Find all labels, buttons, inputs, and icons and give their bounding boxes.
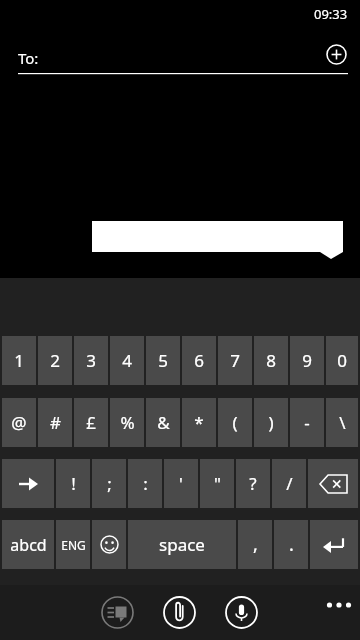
button[interactable]: \ [326,398,358,447]
staticText: - [304,411,310,434]
button[interactable]: Messages [101,596,134,629]
staticText: To: [18,48,39,68]
button[interactable] [2,459,54,508]
staticText: 6 [194,349,204,372]
button[interactable]: 2 [38,336,72,385]
button[interactable]: 1 [2,336,36,385]
staticText: # [50,411,61,434]
button[interactable]: . [274,520,308,569]
staticText: & [157,411,170,434]
staticText: ? [249,472,257,495]
staticText: ( [232,411,238,434]
button[interactable]: Add contact [324,42,348,66]
button[interactable]: @ [2,398,36,447]
staticText: 09:33 [314,5,348,23]
staticText: £ [86,411,96,434]
staticText: ' [179,472,183,495]
staticText: 8 [266,349,276,372]
button[interactable]: More options [318,588,360,622]
staticText: 7 [230,349,240,372]
staticText: / [286,472,293,495]
button[interactable]: : [128,459,162,508]
button[interactable]: ; [92,459,126,508]
button[interactable]: ENG [56,520,90,569]
staticText: @ [11,411,27,434]
button[interactable]: 6 [182,336,216,385]
button[interactable]: abcd [2,520,54,569]
staticText: " [214,472,221,495]
staticText: 2 [50,349,60,372]
staticText: . [289,532,294,557]
staticText: 9 [302,349,312,372]
button[interactable]: % [110,398,144,447]
staticText: 0 [337,349,347,372]
button[interactable] [308,459,358,508]
staticText: 1 [14,349,24,372]
button[interactable]: 3 [74,336,108,385]
staticText: abcd [10,534,47,556]
staticText: : [143,472,148,495]
staticText: ENG [61,537,86,553]
staticText: space [159,533,205,556]
button[interactable]: Attach [163,596,196,629]
button[interactable]: / [272,459,306,508]
button[interactable] [92,520,126,569]
button[interactable]: ! [56,459,90,508]
button[interactable]: & [146,398,180,447]
button[interactable]: , [238,520,272,569]
button[interactable]: 5 [146,336,180,385]
button[interactable]: space [128,520,236,569]
button[interactable]: # [38,398,72,447]
button[interactable]: 0 [326,336,358,385]
button[interactable]: ( [218,398,252,447]
button[interactable]: Voice input [225,596,258,629]
button[interactable]: ' [164,459,198,508]
button[interactable]: * [182,398,216,447]
staticText: \ [339,411,346,434]
staticText: ; [107,472,112,495]
button[interactable]: To: [18,42,348,74]
button[interactable]: " [200,459,234,508]
button[interactable] [310,520,358,569]
staticText: % [120,411,135,434]
button[interactable]: £ [74,398,108,447]
staticText: ! [71,472,76,495]
button[interactable]: 9 [290,336,324,385]
button[interactable]: 8 [254,336,288,385]
staticText: ) [268,411,274,434]
staticText: 5 [158,349,168,372]
staticText: 3 [86,349,96,372]
button[interactable]: ) [254,398,288,447]
staticText: , [253,532,258,557]
button[interactable]: 7 [218,336,252,385]
button[interactable]: - [290,398,324,447]
staticText: * [194,411,204,434]
button[interactable]: ? [236,459,270,508]
button[interactable]: 4 [110,336,144,385]
staticText: 4 [122,349,132,372]
